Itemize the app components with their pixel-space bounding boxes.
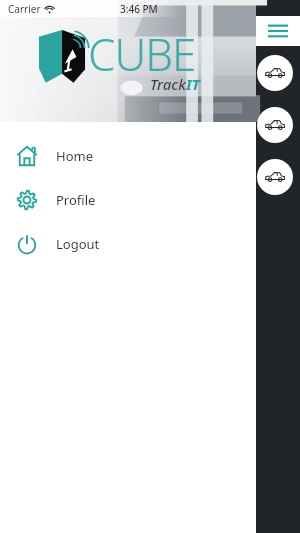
button[interactable]: Vehicle 2 — [257, 107, 293, 143]
staticText: Profile — [56, 191, 96, 209]
button[interactable]: Vehicle 1 — [257, 55, 293, 91]
staticText: Carrier — [8, 2, 41, 16]
staticText: Logout — [56, 235, 100, 253]
button[interactable]: Profile — [0, 178, 256, 222]
staticText: CUBE — [88, 24, 196, 84]
staticText: Track — [150, 74, 186, 94]
button[interactable]: Vehicle 3 — [257, 159, 293, 195]
button[interactable]: Home — [0, 134, 256, 178]
staticText: IT — [186, 74, 200, 94]
staticText: 3:46 PM — [120, 2, 158, 16]
button[interactable]: Open menu — [256, 16, 300, 46]
staticText: Home — [56, 147, 93, 165]
button[interactable]: Logout — [0, 222, 256, 266]
